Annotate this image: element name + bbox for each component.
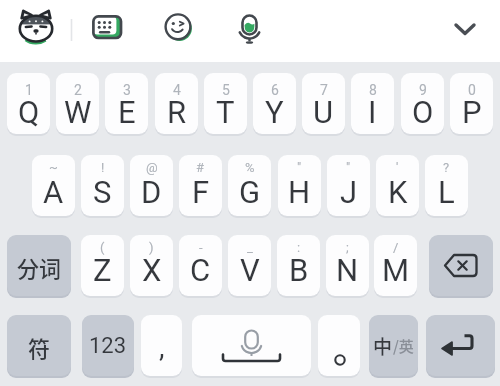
- staticText: 7: [320, 82, 328, 98]
- staticText: H: [288, 174, 311, 210]
- staticText: V: [240, 252, 260, 288]
- staticText: T: [216, 94, 235, 130]
- button[interactable]: #: [179, 155, 222, 216]
- button[interactable]: [192, 315, 311, 376]
- staticText: R: [167, 94, 187, 130]
- staticText: _: [247, 240, 253, 255]
- staticText: A: [43, 174, 64, 210]
- button[interactable]: :: [277, 235, 320, 296]
- button[interactable]: 3: [105, 73, 148, 134]
- staticText: 2: [74, 82, 82, 98]
- staticText: J: [340, 174, 358, 210]
- staticText: #: [196, 160, 205, 175]
- staticText: F: [192, 174, 210, 210]
- staticText: 5: [222, 82, 230, 98]
- button[interactable]: 4: [155, 73, 198, 134]
- staticText: B: [289, 252, 309, 288]
- staticText: 分词: [17, 251, 62, 283]
- staticText: ;: [346, 240, 349, 255]
- staticText: 123: [89, 333, 127, 359]
- button[interactable]: ": [278, 155, 321, 216]
- button[interactable]: (: [81, 235, 124, 296]
- staticText: C: [190, 252, 211, 288]
- staticText: ,: [159, 331, 165, 364]
- button[interactable]: 2: [56, 73, 99, 134]
- staticText: D: [141, 174, 162, 210]
- button[interactable]: ,: [141, 315, 182, 376]
- staticText: 1: [25, 82, 33, 98]
- button[interactable]: [429, 235, 493, 296]
- button[interactable]: !: [81, 155, 124, 216]
- staticText: 8: [369, 82, 377, 98]
- staticText: Y: [265, 94, 284, 130]
- staticText: S: [93, 174, 112, 210]
- staticText: ": [346, 160, 351, 175]
- button[interactable]: [448, 18, 482, 42]
- staticText: E: [118, 94, 136, 130]
- button[interactable]: 123: [82, 315, 134, 376]
- button[interactable]: [19, 10, 53, 46]
- staticText: ": [297, 160, 302, 175]
- button[interactable]: 5: [204, 73, 247, 134]
- staticText: %: [245, 160, 255, 175]
- button[interactable]: 分词: [7, 235, 71, 296]
- button[interactable]: ): [130, 235, 173, 296]
- staticText: L: [438, 174, 455, 210]
- button[interactable]: 9: [401, 73, 444, 134]
- staticText: 3: [123, 82, 131, 98]
- staticText: P: [462, 94, 482, 130]
- staticText: ': [396, 160, 399, 175]
- staticText: Q: [18, 94, 40, 130]
- staticText: Z: [93, 252, 112, 288]
- button[interactable]: /: [374, 235, 417, 296]
- button[interactable]: [163, 12, 193, 42]
- staticText: ): [149, 240, 154, 255]
- staticText: M: [382, 252, 410, 288]
- staticText: @: [146, 160, 158, 175]
- button[interactable]: ': [376, 155, 419, 216]
- button[interactable]: ?: [425, 155, 468, 216]
- button[interactable]: ~: [32, 155, 75, 216]
- staticText: ?: [443, 160, 450, 175]
- staticText: I: [368, 94, 377, 130]
- staticText: O: [412, 94, 434, 130]
- button[interactable]: [426, 315, 495, 376]
- staticText: :: [297, 240, 301, 255]
- staticText: !: [101, 160, 105, 175]
- button[interactable]: _: [228, 235, 271, 296]
- staticText: K: [388, 174, 408, 210]
- button[interactable]: %: [228, 155, 271, 216]
- button[interactable]: [237, 10, 263, 46]
- button[interactable]: -: [179, 235, 222, 296]
- staticText: 符: [28, 331, 51, 363]
- staticText: 6: [271, 82, 279, 98]
- staticText: ~: [49, 160, 58, 175]
- button[interactable]: 8: [351, 73, 394, 134]
- button[interactable]: 0: [450, 73, 493, 134]
- button[interactable]: ;: [326, 235, 369, 296]
- button[interactable]: 6: [253, 73, 296, 134]
- staticText: 9: [419, 82, 427, 98]
- staticText: W: [64, 94, 92, 130]
- staticText: 0: [468, 82, 476, 98]
- staticText: U: [313, 94, 334, 130]
- button[interactable]: 1: [7, 73, 50, 134]
- staticText: 中: [373, 332, 393, 360]
- button[interactable]: 中: [369, 315, 418, 376]
- staticText: G: [239, 174, 261, 210]
- button[interactable]: 符: [7, 315, 71, 376]
- button[interactable]: [318, 315, 360, 376]
- staticText: /: [393, 240, 399, 255]
- staticText: (: [100, 240, 105, 255]
- staticText: 4: [173, 82, 181, 98]
- button[interactable]: [90, 15, 123, 42]
- button[interactable]: 7: [302, 73, 345, 134]
- button[interactable]: @: [130, 155, 173, 216]
- staticText: N: [336, 252, 359, 288]
- staticText: X: [142, 252, 162, 288]
- staticText: /英: [393, 335, 414, 357]
- staticText: -: [199, 240, 203, 255]
- button[interactable]: ": [327, 155, 370, 216]
